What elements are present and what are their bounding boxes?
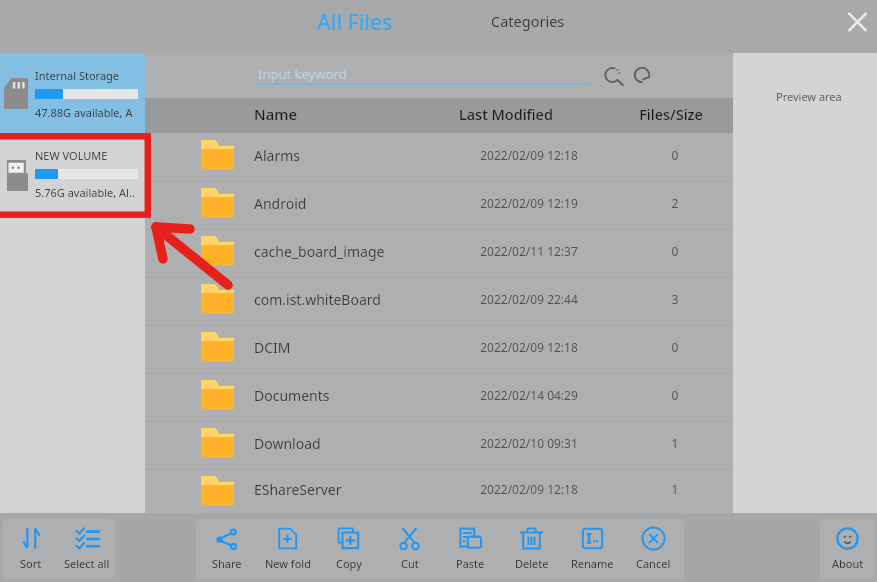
button[interactable]: Sort (3, 519, 59, 579)
staticText: NEW VOLUME (35, 148, 108, 163)
staticText: 0 (585, 387, 765, 403)
staticText: Android (254, 194, 307, 213)
button[interactable]: Search (597, 59, 629, 91)
button[interactable]: Android (145, 181, 733, 229)
staticText: 47.88G available, A (35, 105, 133, 120)
staticText: EShareServer (254, 480, 342, 499)
staticText: 0 (585, 147, 765, 163)
staticText: DCIM (254, 338, 291, 357)
button[interactable]: Rename (562, 519, 623, 579)
staticText: Preview area (776, 89, 842, 104)
button[interactable]: Categories (477, 5, 579, 37)
staticText: 2022/02/11 12:37 (439, 243, 619, 259)
staticText: Last Modified (416, 104, 596, 124)
button[interactable]: Internal Storage (0, 53, 145, 133)
button[interactable]: Documents (145, 373, 733, 421)
staticText: Cut (401, 556, 419, 571)
staticText: 2022/02/14 04:29 (439, 387, 619, 403)
staticText: Copy (336, 556, 362, 571)
button[interactable]: About (820, 519, 875, 579)
staticText: 0 (585, 243, 765, 259)
button[interactable]: Refresh (626, 59, 658, 91)
button[interactable]: EShareServer (145, 469, 733, 513)
staticText: com.ist.whiteBoard (254, 290, 381, 309)
staticText: Sort (20, 556, 42, 571)
staticText: 2 (585, 195, 765, 211)
button[interactable]: Paste (440, 519, 501, 579)
button[interactable]: com.ist.whiteBoard (145, 277, 733, 325)
staticText: Categories (491, 11, 565, 31)
button[interactable]: Delete (501, 519, 562, 579)
button[interactable]: Close (836, 1, 877, 44)
staticText: Download (254, 434, 321, 453)
staticText: About (832, 556, 864, 571)
staticText: Rename (571, 556, 614, 571)
button[interactable]: NEW VOLUME (0, 133, 145, 213)
staticText: 0 (585, 339, 765, 355)
staticText: 1 (585, 481, 765, 497)
staticText: New fold (265, 556, 311, 571)
button[interactable]: Copy (318, 519, 379, 579)
button[interactable]: Cut (379, 519, 440, 579)
staticText: Files/Size (581, 104, 761, 124)
staticText: 2022/02/09 12:18 (439, 339, 619, 355)
staticText: 5.76G available, Al.. (35, 185, 135, 200)
staticText: 3 (585, 291, 765, 307)
staticText: 2022/02/09 12:19 (439, 195, 619, 211)
button[interactable]: Input keyword (255, 67, 590, 85)
staticText: 1 (585, 435, 765, 451)
button[interactable]: cache_board_image (145, 229, 733, 277)
staticText: Internal Storage (35, 68, 120, 83)
staticText: Select all (64, 556, 110, 571)
staticText: Paste (456, 556, 485, 571)
staticText: 2022/02/10 09:31 (439, 435, 619, 451)
button[interactable]: Download (145, 421, 733, 469)
button[interactable]: New fold (257, 519, 318, 579)
button[interactable]: DCIM (145, 325, 733, 373)
staticText: 2022/02/09 22:44 (439, 291, 619, 307)
button[interactable]: Share (196, 519, 257, 579)
button[interactable]: Select all (59, 519, 115, 579)
staticText: 2022/02/09 12:18 (439, 147, 619, 163)
staticText: cache_board_image (254, 242, 385, 261)
button[interactable]: All Files (303, 2, 407, 43)
staticText: Alarms (254, 146, 300, 165)
staticText: Input keyword (258, 65, 347, 83)
staticText: Documents (254, 386, 330, 405)
staticText: Delete (515, 556, 549, 571)
button[interactable]: Alarms (145, 133, 733, 181)
button[interactable]: Cancel (623, 519, 684, 579)
staticText: All Files (317, 8, 393, 37)
staticText: 2022/02/09 12:18 (439, 481, 619, 497)
staticText: Name (254, 104, 298, 124)
staticText: Cancel (636, 556, 671, 571)
staticText: Share (212, 556, 242, 571)
